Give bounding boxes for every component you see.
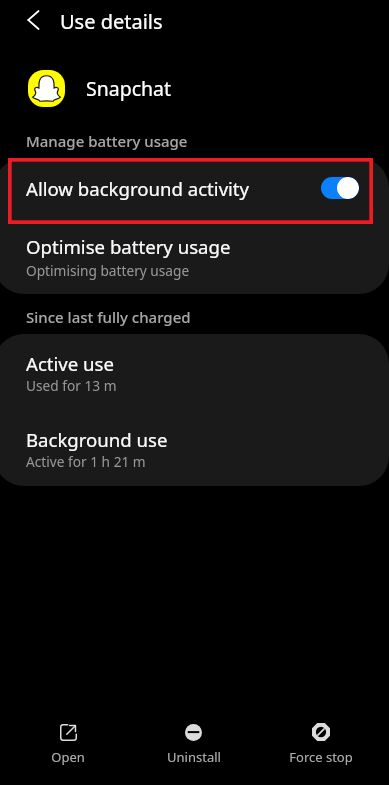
staticText: Optimise battery usage — [26, 234, 231, 259]
button[interactable]: Active use — [0, 334, 389, 410]
staticText: Manage battery usage — [26, 131, 188, 151]
staticText: Snapchat — [86, 75, 172, 102]
button[interactable]: Optimise battery usage — [0, 224, 389, 294]
staticText: Active use — [26, 351, 114, 376]
button[interactable]: Back — [14, 1, 52, 39]
button[interactable]: Allow background activity — [0, 158, 389, 224]
button[interactable]: Open — [4, 708, 132, 776]
button[interactable]: Uninstall — [130, 708, 257, 776]
button[interactable]: Snapchat — [0, 62, 389, 114]
staticText: Since last fully charged — [26, 307, 191, 327]
staticText: Optimising battery usage — [26, 261, 190, 280]
other: Open — [60, 724, 77, 741]
staticText: Active for 1 h 21 m — [26, 452, 146, 471]
button[interactable]: Force stop — [257, 708, 385, 776]
staticText: Allow background activity — [26, 176, 250, 201]
staticText: Open — [51, 748, 85, 766]
other: Uninstall — [185, 724, 202, 741]
other: Force stop — [312, 723, 330, 741]
staticText: Force stop — [289, 748, 353, 766]
staticText: Background use — [26, 427, 168, 452]
staticText: Uninstall — [167, 748, 221, 766]
staticText: Used for 13 m — [26, 376, 117, 395]
staticText: Use details — [60, 8, 163, 35]
button[interactable]: Background use — [0, 410, 389, 486]
button[interactable]: Allow background activity toggle — [321, 177, 359, 199]
